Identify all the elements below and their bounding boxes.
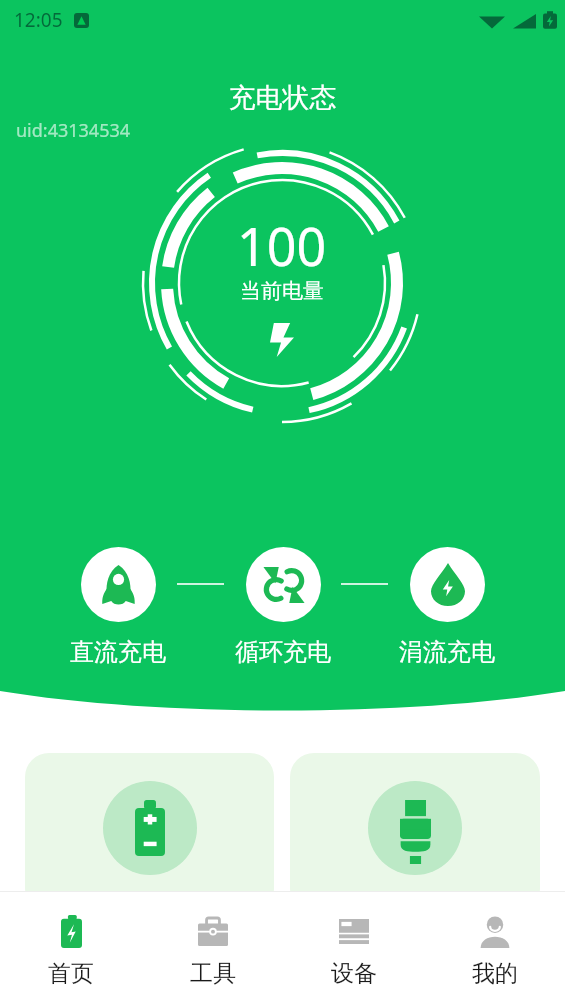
staticText: 工具 — [190, 959, 236, 988]
button[interactable]: 循环充电 — [228, 547, 338, 667]
button[interactable]: 首页 — [0, 891, 142, 1004]
button[interactable]: 设备 — [283, 891, 424, 1004]
button[interactable]: 我的 — [424, 891, 565, 1004]
button[interactable]: 直流充电 — [63, 547, 173, 667]
staticText: 循环充电 — [235, 637, 331, 667]
staticText: 直流充电 — [70, 637, 166, 667]
button[interactable] — [290, 753, 540, 913]
button[interactable] — [25, 753, 274, 913]
staticText: 12:05 — [14, 7, 63, 33]
staticText: 涓流充电 — [399, 637, 495, 667]
staticText: 我的 — [472, 959, 518, 988]
staticText: 充电状态 — [0, 81, 565, 115]
staticText: 设备 — [331, 959, 377, 988]
button[interactable]: 工具 — [142, 891, 283, 1004]
staticText: uid:43134534 — [16, 118, 131, 143]
button[interactable]: 涓流充电 — [392, 547, 502, 667]
staticText: 当前电量 — [240, 278, 324, 304]
staticText: 首页 — [48, 959, 94, 988]
staticText: 100 — [237, 210, 327, 281]
